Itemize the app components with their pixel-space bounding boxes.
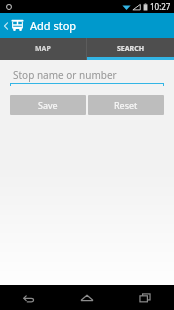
staticText: Add stop [30,18,77,33]
button[interactable]: Reset [88,95,164,115]
button[interactable]: Save [10,95,86,115]
staticText: MAP [35,44,51,54]
staticText: 10:27 [150,1,171,12]
button[interactable]: Stop name or number [10,66,164,86]
button[interactable]: MAP [0,38,86,60]
staticText: Save [38,99,58,111]
staticText: SEARCH [117,44,145,54]
button[interactable]: Add stop [0,13,174,38]
staticText: Reset [114,99,138,111]
button[interactable]: Back [0,285,58,310]
button[interactable]: Home [58,285,116,310]
staticText: Stop name or number [13,68,117,82]
button[interactable]: SEARCH [87,38,174,60]
button[interactable]: Recent apps [116,285,174,310]
